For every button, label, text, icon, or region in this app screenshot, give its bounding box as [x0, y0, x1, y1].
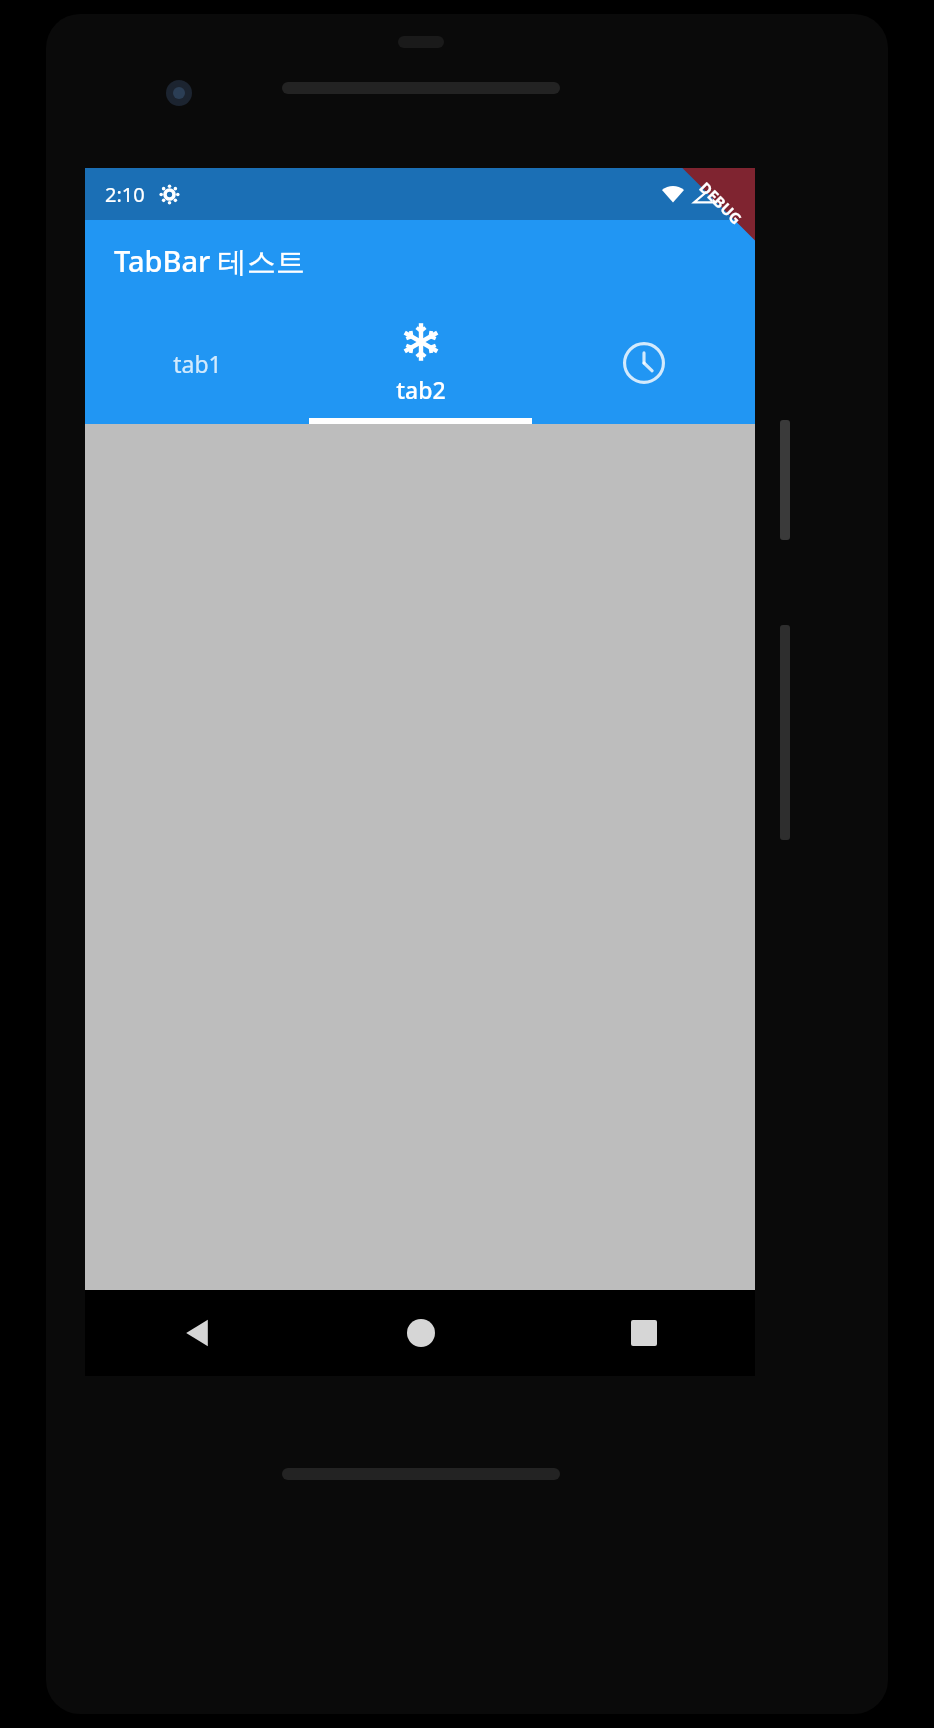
button[interactable]: Back: [85, 1290, 309, 1376]
staticText: 2:10: [105, 181, 145, 208]
staticText: TabBar 테스트: [114, 241, 305, 281]
staticText: tab1: [173, 348, 222, 379]
button[interactable]: Recents: [532, 1290, 755, 1376]
staticText: DEBUG: [695, 177, 746, 228]
staticText: tab2: [396, 374, 446, 405]
button[interactable]: Recent: [532, 302, 755, 424]
button[interactable]: Home: [309, 1290, 532, 1376]
button[interactable]: tab2: [309, 302, 532, 424]
button[interactable]: tab1: [85, 302, 309, 424]
